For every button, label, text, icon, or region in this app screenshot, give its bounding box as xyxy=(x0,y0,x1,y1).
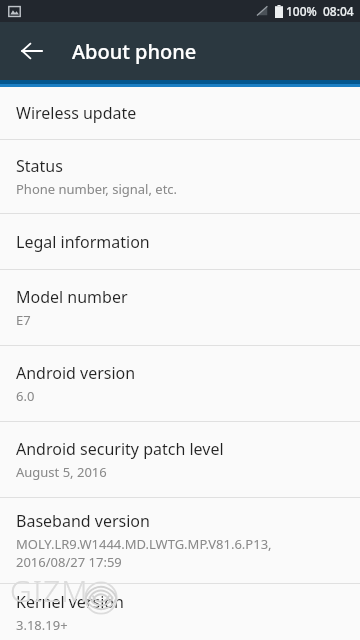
staticText: 08:04 xyxy=(323,3,354,19)
button[interactable]: Model number xyxy=(0,270,360,345)
button[interactable]: Kernel version xyxy=(0,584,360,640)
staticText: 6.0 xyxy=(16,387,35,405)
staticText: Android security patch level xyxy=(16,438,224,460)
staticText: Baseband version xyxy=(16,510,150,532)
staticText: Model number xyxy=(16,286,128,308)
staticText: GIZM CHINA xyxy=(10,570,200,616)
button[interactable]: Legal information xyxy=(0,214,360,269)
staticText: About phone xyxy=(72,38,197,65)
staticText: 3.18.19+ xyxy=(16,616,68,634)
staticText: Status xyxy=(16,155,63,177)
staticText: Legal information xyxy=(16,231,150,253)
staticText: Kernel version xyxy=(16,591,124,613)
button[interactable]: Android security patch level xyxy=(0,422,360,497)
staticText: August 5, 2016 xyxy=(16,463,107,481)
staticText: Wireless update xyxy=(16,102,137,124)
staticText: E7 xyxy=(16,311,31,329)
staticText: 100% xyxy=(286,3,317,19)
staticText: MOLY.LR9.W1444.MD.LWTG.MP.V81.6.P13, 201… xyxy=(16,535,272,571)
staticText: Phone number, signal, etc. xyxy=(16,180,178,198)
button[interactable]: Wireless update xyxy=(0,87,360,139)
staticText: Android version xyxy=(16,362,136,384)
button[interactable]: Back xyxy=(8,27,56,75)
button[interactable]: Android version xyxy=(0,346,360,421)
button[interactable]: Baseband version xyxy=(0,498,360,583)
button[interactable]: Status xyxy=(0,140,360,213)
